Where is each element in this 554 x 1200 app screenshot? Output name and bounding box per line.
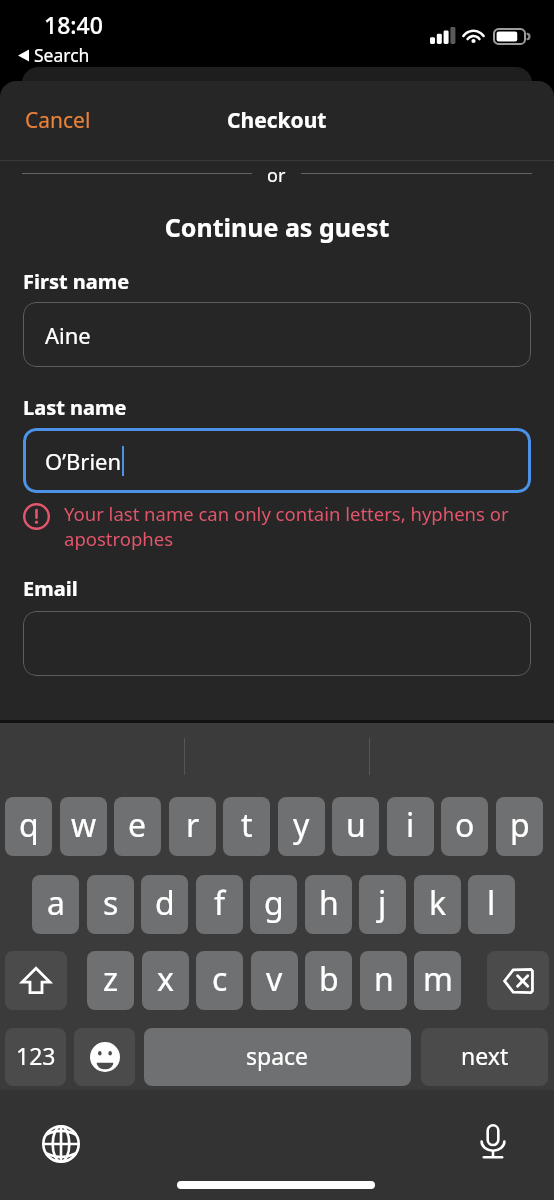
button[interactable]: q	[5, 797, 52, 856]
button[interactable]: Cancel	[8, 96, 108, 145]
button[interactable]: next	[421, 1028, 548, 1086]
staticText: First name	[23, 268, 130, 295]
button[interactable]: r	[169, 797, 216, 856]
staticText: c	[212, 957, 228, 1001]
button[interactable]: g	[250, 875, 297, 934]
button[interactable]: h	[305, 875, 352, 934]
button[interactable]: Dictation	[474, 1123, 512, 1161]
button[interactable]: s	[87, 875, 134, 934]
button[interactable]: w	[60, 797, 107, 856]
staticText: h	[319, 881, 339, 925]
button[interactable]: a	[32, 875, 79, 934]
staticText: p	[510, 803, 530, 847]
staticText: Aine	[45, 320, 91, 350]
staticText: Last name	[23, 394, 127, 421]
staticText: d	[155, 881, 175, 925]
staticText: g	[264, 881, 284, 925]
button[interactable]: emoji	[74, 1028, 135, 1086]
staticText: or	[267, 163, 286, 184]
staticText: space	[246, 1040, 309, 1071]
staticText: w	[71, 803, 97, 847]
button[interactable]: b	[305, 951, 352, 1010]
staticText: t	[241, 803, 253, 847]
button[interactable]: n	[360, 951, 407, 1010]
staticText: m	[423, 957, 453, 1001]
staticText: Cancel	[25, 106, 91, 135]
button[interactable]: o	[441, 797, 488, 856]
staticText: Email	[23, 575, 78, 602]
staticText: Search	[34, 43, 90, 67]
staticText: k	[429, 881, 447, 925]
staticText: u	[346, 803, 366, 847]
staticText: e	[128, 803, 147, 847]
button[interactable]: p	[496, 797, 543, 856]
button[interactable]: k	[414, 875, 461, 934]
button[interactable]: z	[87, 951, 134, 1010]
staticText: s	[103, 881, 119, 925]
staticText: b	[319, 957, 339, 1001]
staticText: j	[378, 881, 387, 925]
staticText: x	[157, 957, 174, 1001]
staticText: l	[487, 881, 496, 925]
button[interactable]: d	[141, 875, 188, 934]
staticText: O’Brien	[45, 446, 122, 476]
staticText: f	[214, 881, 226, 925]
button[interactable]: v	[251, 951, 298, 1010]
staticText: 18:40	[44, 9, 103, 40]
button[interactable]: u	[332, 797, 379, 856]
button[interactable]: 123	[5, 1028, 66, 1086]
staticText: Continue as guest	[0, 210, 554, 244]
button[interactable]: space	[144, 1028, 411, 1086]
staticText: Your last name can only contain letters,…	[64, 501, 523, 552]
staticText: a	[47, 881, 65, 925]
staticText: i	[406, 803, 415, 847]
button[interactable]: Change keyboard	[42, 1125, 80, 1163]
staticText: n	[374, 957, 394, 1001]
button[interactable]: i	[387, 797, 434, 856]
button[interactable]	[23, 611, 531, 676]
button[interactable]: m	[414, 951, 461, 1010]
staticText: Checkout	[227, 106, 327, 135]
button[interactable]: t	[223, 797, 270, 856]
staticText: q	[19, 803, 39, 847]
button[interactable]: l	[468, 875, 515, 934]
button[interactable]: backspace	[487, 951, 549, 1010]
staticText: v	[266, 957, 283, 1001]
button[interactable]: j	[359, 875, 406, 934]
staticText: next	[461, 1040, 509, 1071]
button[interactable]: e	[114, 797, 161, 856]
staticText: z	[103, 957, 119, 1001]
staticText: r	[186, 803, 200, 847]
button[interactable]: shift	[5, 951, 67, 1010]
staticText: o	[455, 803, 475, 847]
staticText: y	[293, 803, 310, 847]
button[interactable]: c	[196, 951, 243, 1010]
button[interactable]: y	[278, 797, 325, 856]
button[interactable]: O’Brien	[23, 428, 531, 493]
button[interactable]: x	[142, 951, 189, 1010]
button[interactable]: f	[196, 875, 243, 934]
button[interactable]: Aine	[23, 302, 531, 367]
staticText: 123	[16, 1040, 56, 1071]
